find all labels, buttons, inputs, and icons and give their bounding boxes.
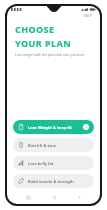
other: plan	[18, 142, 24, 148]
staticText: Lose weight with the plan that suits you…	[15, 52, 84, 56]
button[interactable]: SKIP	[82, 13, 94, 19]
staticText: Butt lift & tone	[28, 143, 57, 148]
button[interactable]: plan	[13, 138, 94, 152]
other: plan	[18, 178, 24, 184]
staticText: Build muscle & strength	[28, 179, 74, 184]
staticText: Lose belly fat	[28, 161, 54, 166]
staticText: SKIP	[84, 14, 92, 18]
button[interactable]: Recents	[23, 193, 33, 201]
button[interactable]: plan	[13, 120, 94, 134]
other: plan	[18, 124, 24, 130]
staticText: CHOOSE	[15, 23, 55, 35]
staticText: Lose Weight & keep fit	[28, 125, 72, 130]
button[interactable]: Back	[74, 193, 84, 201]
other: plan	[18, 160, 24, 166]
button[interactable]: Home	[49, 193, 59, 201]
button[interactable]: plan	[13, 156, 94, 170]
staticText: YOUR PLAN	[15, 37, 72, 49]
button[interactable]: plan	[13, 174, 94, 188]
